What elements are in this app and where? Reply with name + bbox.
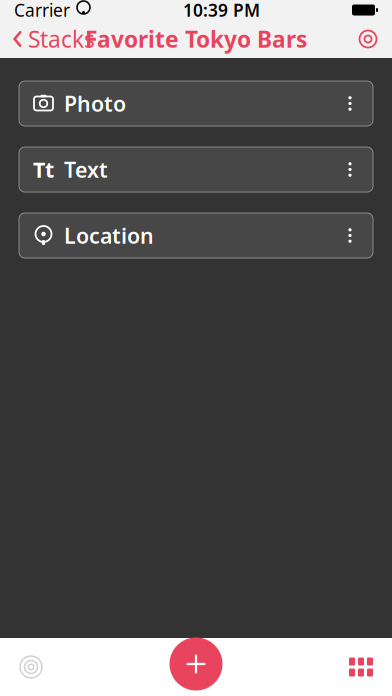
staticText: Carrier [14, 0, 70, 21]
button[interactable]: Broadcast [0, 638, 62, 696]
staticText: 10:39 PM [183, 0, 260, 21]
button[interactable]: Location [19, 213, 373, 258]
button[interactable]: Settings [344, 20, 392, 58]
staticText: Stacks [28, 24, 95, 54]
staticText: Favorite Tokyo Bars [85, 24, 307, 54]
button[interactable]: Grid view [330, 638, 392, 696]
button[interactable]: Stacks [0, 20, 107, 58]
button[interactable]: Tt [19, 147, 373, 192]
staticText: Text [64, 155, 108, 184]
staticText: Tt [33, 155, 54, 184]
staticText: Photo [64, 89, 126, 118]
button[interactable]: Photo [19, 81, 373, 126]
button[interactable]: Add [167, 635, 225, 693]
staticText: Location [64, 221, 154, 250]
